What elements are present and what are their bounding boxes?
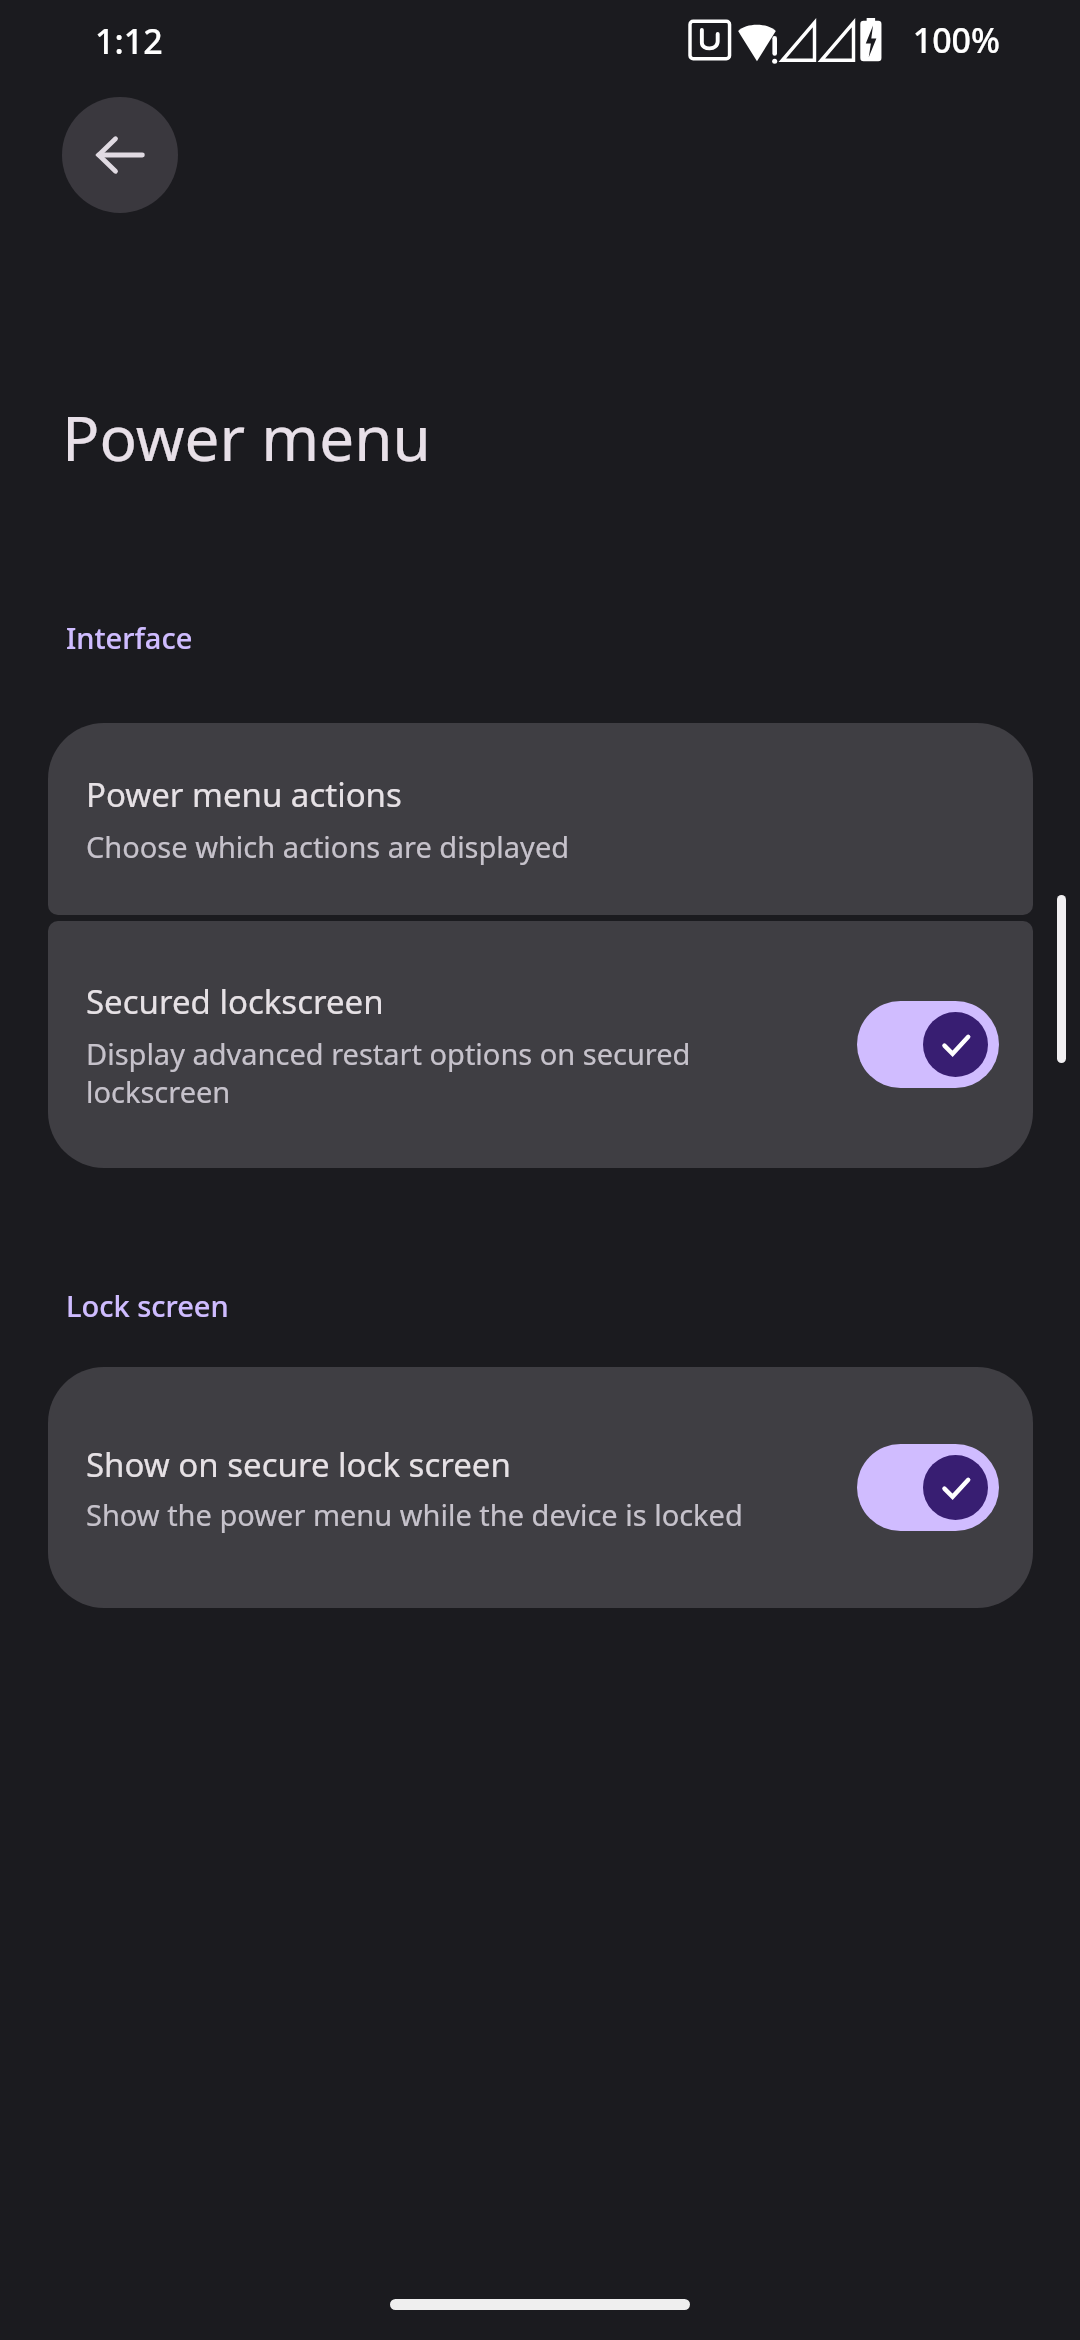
staticText: 1:12: [95, 18, 163, 64]
staticText: Power menu: [62, 395, 431, 479]
staticText: Secured lockscreen: [86, 979, 384, 1024]
button[interactable]: Show on secure lock screen: [48, 1367, 1033, 1608]
staticText: Show the power menu while the device is …: [86, 1495, 743, 1534]
button[interactable]: Toggle setting: [857, 1001, 999, 1088]
staticText: Power menu actions: [86, 772, 402, 817]
button[interactable]: Power menu actions: [48, 723, 1033, 915]
staticText: Lock screen: [66, 1286, 229, 1325]
staticText: Interface: [66, 618, 193, 657]
button[interactable]: Secured lockscreen: [48, 921, 1033, 1168]
button[interactable]: Toggle setting: [857, 1444, 999, 1531]
staticText: 100%: [912, 17, 1000, 63]
staticText: Display advanced restart options on secu…: [86, 1034, 839, 1111]
button[interactable]: Back: [62, 97, 178, 213]
staticText: Choose which actions are displayed: [86, 827, 570, 866]
staticText: Show on secure lock screen: [86, 1442, 511, 1487]
